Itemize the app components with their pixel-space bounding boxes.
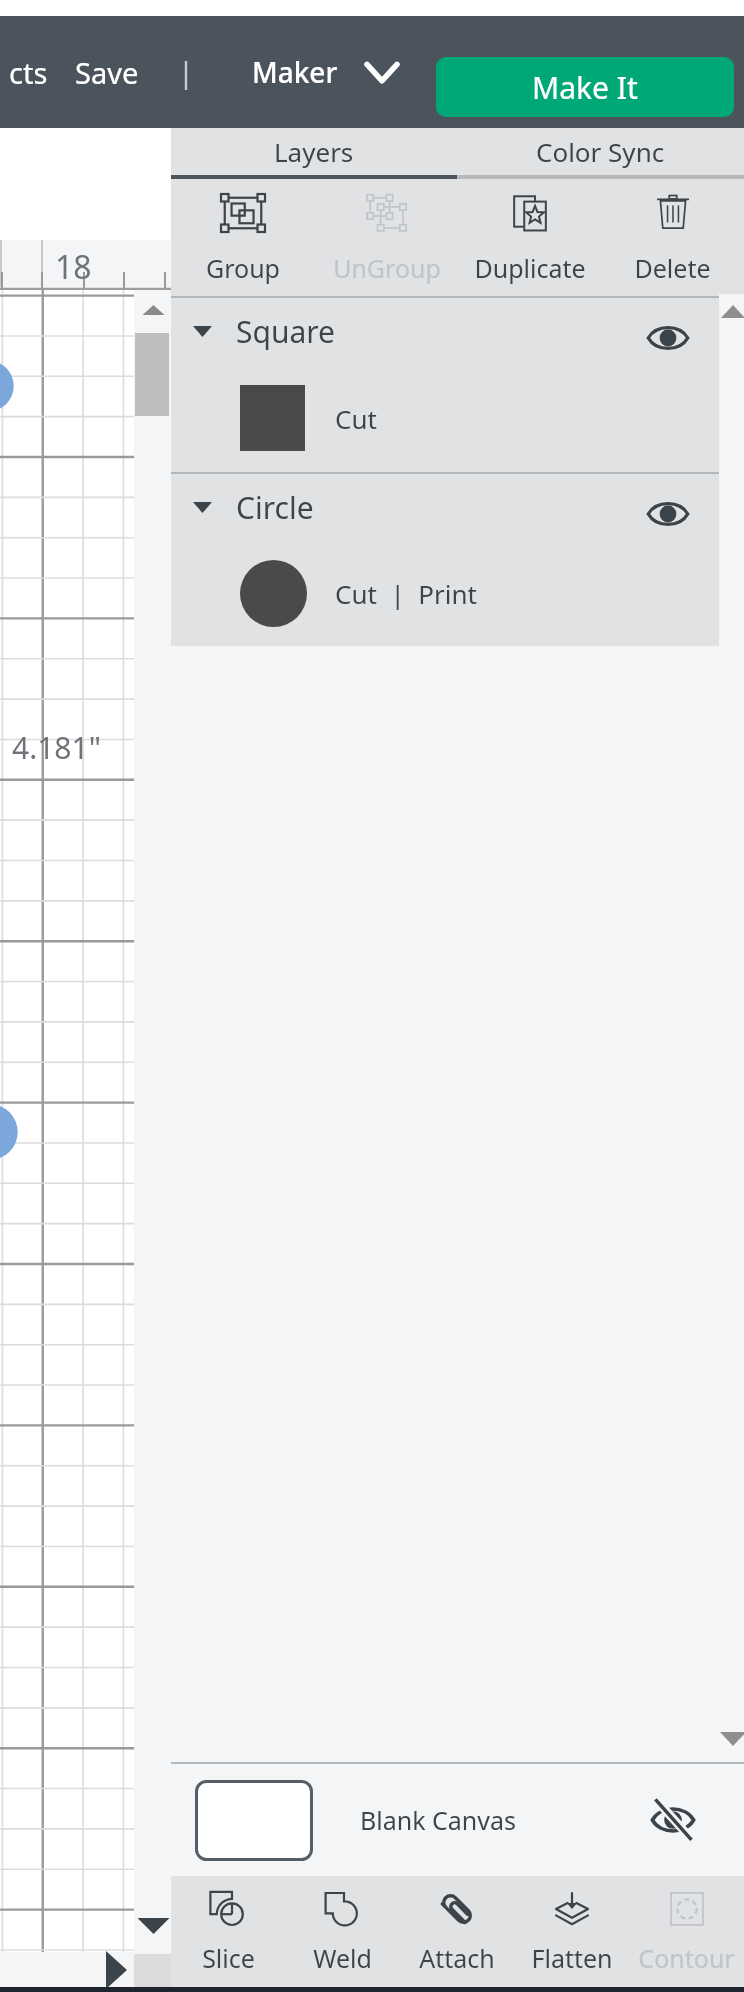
staticText: Square [236, 311, 335, 352]
button[interactable]: Make It [436, 57, 734, 117]
staticText: Maker [252, 53, 338, 91]
button[interactable]: Save [70, 49, 144, 95]
staticText: 4.181" [12, 727, 101, 768]
staticText: Save [75, 53, 139, 92]
button[interactable]: UnGroup [315, 179, 458, 296]
button[interactable]: Attach [399, 1876, 514, 1988]
staticText: Circle [236, 487, 314, 528]
button[interactable]: Blank Canvas [171, 1764, 744, 1876]
staticText: Group [206, 251, 280, 285]
staticText: Weld [313, 1941, 372, 1975]
button[interactable]: Weld [285, 1876, 399, 1988]
staticText: Cut | Print [335, 576, 477, 611]
button[interactable]: Duplicate [458, 179, 601, 296]
button[interactable]: Group [171, 179, 315, 296]
button[interactable]: Toggle visibility [636, 299, 700, 363]
staticText: Cut [335, 401, 377, 436]
button[interactable]: Color Sync [457, 128, 744, 175]
button[interactable]: Square [171, 298, 744, 364]
staticText: Duplicate [474, 251, 586, 285]
button[interactable]: Circle [171, 474, 744, 540]
staticText: | [178, 52, 194, 91]
staticText: Contour [638, 1941, 735, 1975]
staticText: Layers [274, 134, 354, 169]
button[interactable]: Cut | Print [171, 540, 744, 646]
button[interactable]: Slice [171, 1876, 285, 1988]
staticText: UnGroup [333, 251, 441, 285]
button[interactable]: Delete [601, 179, 744, 296]
button[interactable]: cts [0, 49, 48, 95]
staticText: cts [9, 53, 48, 92]
staticText: Make It [532, 67, 638, 108]
staticText: Blank Canvas [360, 1803, 517, 1837]
staticText: Slice [202, 1941, 255, 1975]
button[interactable]: Contour [629, 1876, 744, 1988]
staticText: Delete [634, 251, 711, 285]
button[interactable]: Toggle visibility [636, 475, 700, 539]
button[interactable]: Flatten [514, 1876, 629, 1988]
staticText: 18 [55, 245, 92, 289]
button[interactable]: Hide canvas [637, 1784, 709, 1856]
button[interactable]: Layers [171, 128, 457, 175]
staticText: Color Sync [536, 134, 665, 169]
button[interactable]: Cut [171, 364, 744, 472]
staticText: Attach [419, 1941, 495, 1975]
button[interactable]: Maker [252, 47, 400, 97]
staticText: Flatten [531, 1941, 613, 1975]
